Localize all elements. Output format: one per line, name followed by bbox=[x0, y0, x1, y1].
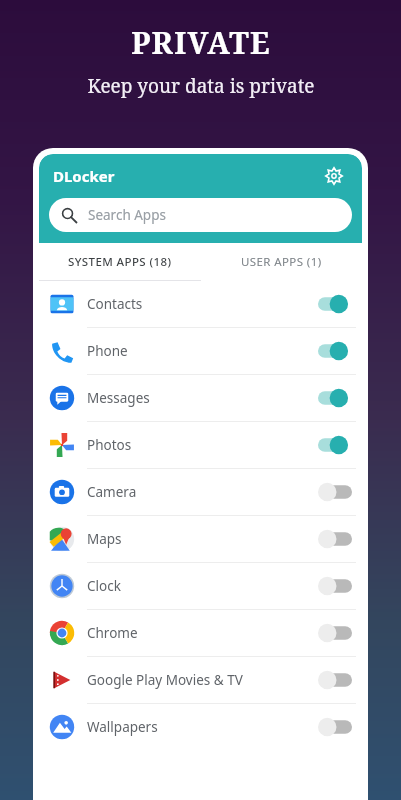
staticText: DLocker bbox=[53, 166, 115, 186]
button[interactable]: Search Apps bbox=[49, 198, 352, 232]
button[interactable]: Settings bbox=[320, 162, 348, 190]
button[interactable]: Messages bbox=[39, 375, 362, 421]
staticText: Contacts bbox=[87, 295, 143, 313]
staticText: Google Play Movies & TV bbox=[87, 671, 243, 689]
staticText: Clock bbox=[87, 577, 121, 595]
staticText: Search Apps bbox=[88, 206, 166, 224]
button[interactable]: Maps bbox=[39, 516, 362, 562]
staticText: Keep your data is private bbox=[87, 73, 315, 99]
staticText: PRIVATE bbox=[131, 22, 271, 63]
button[interactable]: Wallpapers bbox=[39, 704, 362, 750]
button[interactable]: Phone bbox=[39, 328, 362, 374]
staticText: Chrome bbox=[87, 624, 138, 642]
button[interactable]: Contacts bbox=[39, 281, 362, 327]
button[interactable]: Camera bbox=[39, 469, 362, 515]
staticText: Wallpapers bbox=[87, 718, 158, 736]
button[interactable]: Clock bbox=[39, 563, 362, 609]
button[interactable]: USER APPS (1) bbox=[200, 243, 362, 281]
staticText: Messages bbox=[87, 389, 150, 407]
button[interactable]: Chrome bbox=[39, 610, 362, 656]
staticText: Camera bbox=[87, 483, 137, 501]
button[interactable]: Photos bbox=[39, 422, 362, 468]
staticText: USER APPS (1) bbox=[241, 254, 322, 270]
staticText: Maps bbox=[87, 530, 122, 548]
staticText: Phone bbox=[87, 342, 128, 360]
staticText: Photos bbox=[87, 436, 132, 454]
button[interactable]: Google Play Movies & TV bbox=[39, 657, 362, 703]
button[interactable]: SYSTEM APPS (18) bbox=[39, 243, 200, 281]
staticText: SYSTEM APPS (18) bbox=[68, 254, 172, 270]
